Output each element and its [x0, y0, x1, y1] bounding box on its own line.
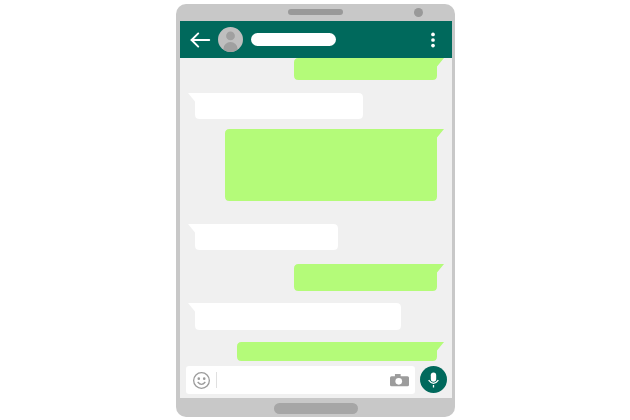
button[interactable]: Camera — [390, 371, 409, 390]
button[interactable]: Record voice message — [420, 366, 447, 393]
button[interactable]: Back — [189, 29, 211, 51]
button[interactable] — [294, 58, 444, 80]
button[interactable]: Contact photo — [218, 27, 243, 52]
button[interactable]: Emoji — [193, 372, 210, 389]
button[interactable]: More options — [423, 30, 443, 50]
button[interactable] — [225, 129, 444, 201]
button[interactable] — [237, 342, 444, 361]
button[interactable] — [294, 264, 444, 291]
button[interactable]: Emoji — [186, 366, 415, 394]
button[interactable] — [251, 33, 336, 46]
